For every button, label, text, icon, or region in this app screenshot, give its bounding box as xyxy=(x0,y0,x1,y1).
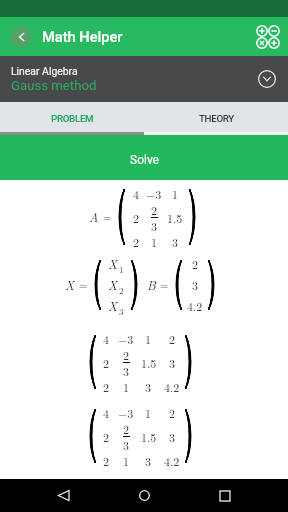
staticText: X xyxy=(108,255,118,273)
staticText: 4.2 xyxy=(164,378,180,395)
button[interactable]: Solve xyxy=(0,135,288,180)
staticText: 2 xyxy=(123,420,130,437)
button[interactable]: Recent apps xyxy=(208,479,241,512)
staticText: THEORY xyxy=(199,113,234,124)
staticText: 3 xyxy=(119,305,124,318)
staticText: 2 xyxy=(103,354,110,371)
staticText: 1 xyxy=(145,404,152,421)
button[interactable]: Calculator xyxy=(252,21,284,53)
staticText: 3 xyxy=(172,233,179,250)
staticText: X xyxy=(108,297,118,315)
staticText: Solve xyxy=(130,153,159,167)
staticText: B xyxy=(147,276,156,294)
staticText: 4 xyxy=(103,404,110,421)
staticText: 2 xyxy=(133,233,140,250)
staticText: Linear Algebra xyxy=(11,65,78,77)
staticText: 3 xyxy=(169,428,176,445)
staticText: 3 xyxy=(169,354,176,371)
staticText: 1 xyxy=(123,452,130,469)
staticText: = xyxy=(79,277,88,293)
staticText: 2 xyxy=(151,201,158,218)
staticText: 1.5 xyxy=(141,428,157,445)
staticText: 2 xyxy=(119,284,124,297)
button[interactable]: Expand xyxy=(254,66,280,92)
staticText: 1 xyxy=(172,185,179,202)
staticText: A xyxy=(89,208,99,226)
staticText: −3 xyxy=(146,185,162,202)
staticText: X xyxy=(65,276,75,294)
staticText: 1 xyxy=(145,330,152,347)
staticText: 3 xyxy=(151,217,158,234)
staticText: 2 xyxy=(103,428,110,445)
staticText: 1.5 xyxy=(141,354,157,371)
staticText: 1 xyxy=(151,233,158,250)
staticText: 1 xyxy=(119,263,124,276)
staticText: 3 xyxy=(123,436,130,453)
staticText: 4 xyxy=(133,185,140,202)
staticText: 2 xyxy=(103,378,110,395)
staticText: 2 xyxy=(103,452,110,469)
staticText: = xyxy=(160,277,169,293)
staticText: 2 xyxy=(123,346,130,363)
staticText: Gauss method xyxy=(11,78,97,93)
staticText: X xyxy=(108,276,118,294)
staticText: 2 xyxy=(133,209,140,226)
button[interactable]: Back xyxy=(47,479,80,512)
staticText: 3 xyxy=(145,378,152,395)
staticText: 2 xyxy=(169,404,176,421)
staticText: −3 xyxy=(118,330,134,347)
staticText: 3 xyxy=(192,276,199,293)
staticText: −3 xyxy=(118,404,134,421)
staticText: PROBLEM xyxy=(51,113,94,124)
staticText: Math Helper xyxy=(42,28,123,45)
staticText: 4.2 xyxy=(164,452,180,469)
staticText: 3 xyxy=(145,452,152,469)
staticText: 1.5 xyxy=(167,209,183,226)
staticText: 2 xyxy=(192,255,199,272)
staticText: 1 xyxy=(123,378,130,395)
staticText: 4.2 xyxy=(187,297,203,314)
staticText: 4 xyxy=(103,330,110,347)
staticText: = xyxy=(103,209,112,225)
button[interactable]: Home xyxy=(128,479,161,512)
staticText: 3 xyxy=(123,362,130,379)
button[interactable]: PROBLEM xyxy=(0,102,144,135)
staticText: 2 xyxy=(169,330,176,347)
button[interactable]: Navigate up xyxy=(7,23,35,51)
button[interactable]: THEORY xyxy=(144,102,288,135)
